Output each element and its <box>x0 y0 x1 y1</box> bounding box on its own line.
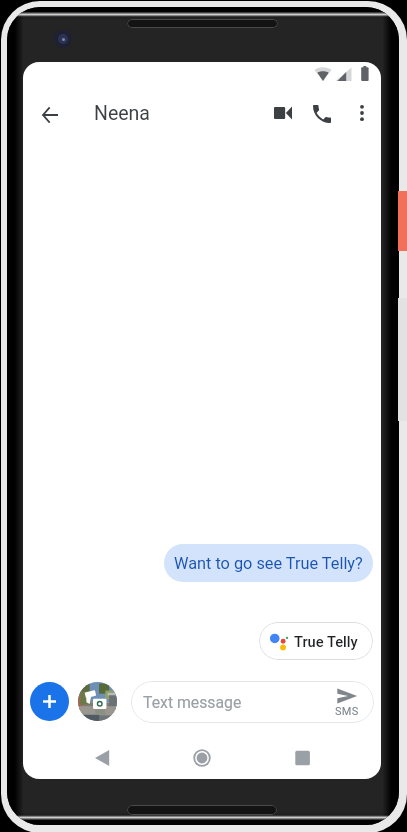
staticText: True Telly <box>294 633 358 650</box>
button[interactable]: Add attachment <box>30 682 69 721</box>
button[interactable]: More options <box>341 92 381 134</box>
button[interactable]: Back <box>86 738 126 778</box>
button[interactable]: Call <box>300 92 344 136</box>
button[interactable]: Back <box>27 92 72 137</box>
button[interactable]: Want to go see True Telly? <box>164 544 373 582</box>
staticText: SMS <box>335 705 359 718</box>
button[interactable]: Recents <box>282 738 322 778</box>
button[interactable]: Home <box>182 738 222 778</box>
button[interactable]: Text message <box>131 681 374 723</box>
button[interactable]: True Telly <box>259 622 373 660</box>
button[interactable]: Video call <box>260 92 305 137</box>
button[interactable]: Send SMS <box>329 684 365 720</box>
button[interactable]: Camera <box>78 682 117 721</box>
staticText: Text message <box>143 693 242 712</box>
staticText: Want to go see True Telly? <box>174 554 363 573</box>
staticText: Neena <box>94 102 150 125</box>
